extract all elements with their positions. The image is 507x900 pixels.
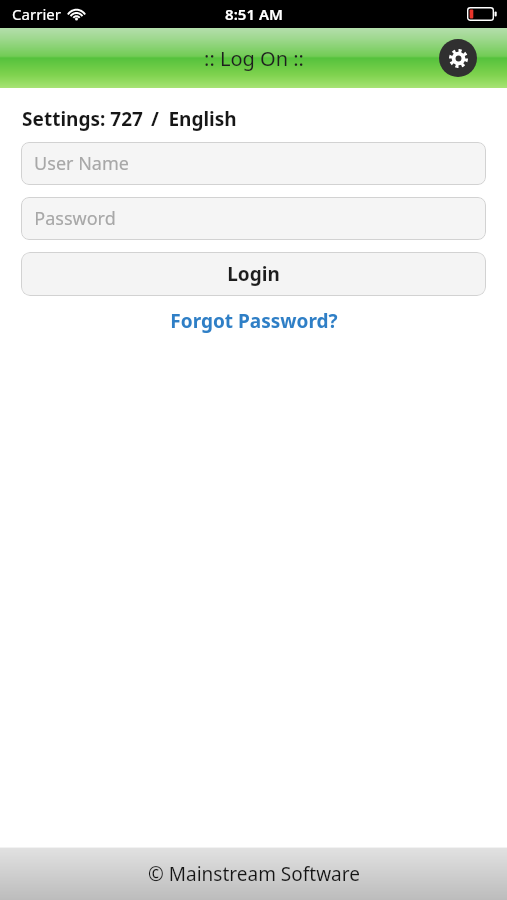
button[interactable]: Forgot Password?	[162, 305, 346, 337]
staticText: /	[151, 106, 159, 132]
staticText: 8:51 AM	[225, 4, 283, 24]
staticText: Settings: 727	[22, 106, 143, 132]
staticText: Password	[34, 206, 116, 231]
button[interactable]: User Name	[21, 142, 486, 185]
button[interactable]: Password	[21, 197, 486, 240]
staticText: :: Log On ::	[204, 45, 304, 72]
staticText: English	[168, 106, 237, 132]
staticText: © Mainstream Software	[148, 861, 360, 887]
staticText: User Name	[34, 151, 129, 176]
staticText: Carrier	[12, 4, 61, 24]
button[interactable]: Login	[21, 252, 486, 296]
button[interactable]: Settings	[439, 39, 477, 77]
staticText: Login	[227, 261, 280, 287]
staticText: Forgot Password?	[170, 308, 338, 334]
